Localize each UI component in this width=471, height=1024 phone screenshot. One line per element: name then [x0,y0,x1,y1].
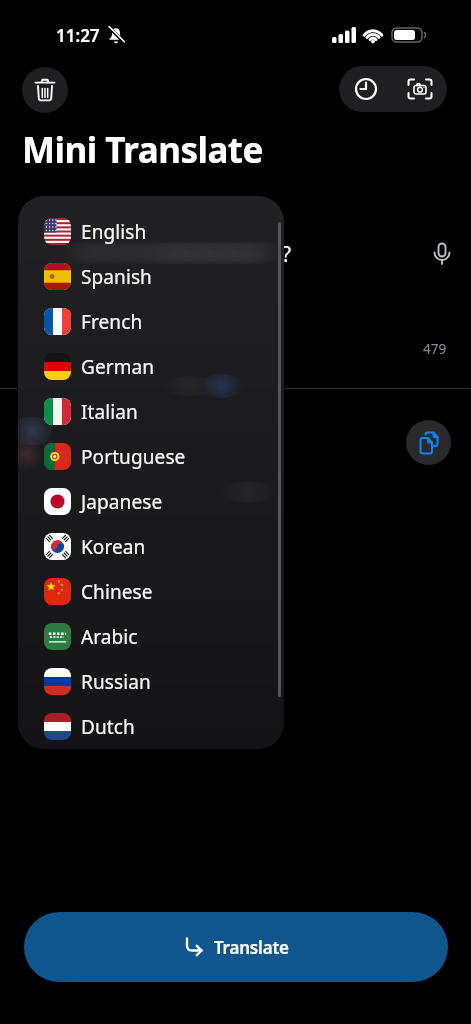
staticText: Translate [214,936,289,959]
button[interactable] [339,66,393,112]
staticText: Korean [81,534,146,560]
button[interactable]: Korean [18,524,284,569]
button[interactable] [428,240,456,268]
button[interactable]: Portuguese [18,434,284,479]
staticText: 479 [423,340,447,358]
button[interactable] [393,66,447,112]
staticText: Arabic [81,624,138,650]
staticText: German [81,354,155,380]
button[interactable]: Japanese [18,479,284,524]
staticText: Chinese [81,579,153,605]
staticText: Spanish [81,264,152,290]
button[interactable]: Arabic [18,614,284,659]
button[interactable]: German [18,344,284,389]
button[interactable] [406,420,451,465]
button[interactable]: Chinese [18,569,284,614]
staticText: English [81,219,147,245]
staticText: Japanese [81,489,163,515]
button[interactable]: English [18,209,284,254]
staticText: 11:27 [56,24,100,47]
staticText: ? [282,240,292,269]
button[interactable]: Dutch [18,704,284,749]
button[interactable]: Spanish [18,254,284,299]
staticText: Mini Translate [22,126,263,174]
button[interactable]: Italian [18,389,284,434]
staticText: French [81,309,143,335]
button[interactable]: Translate [24,912,448,982]
staticText: Italian [81,399,138,425]
staticText: Dutch [81,714,135,740]
staticText: Russian [81,669,151,695]
button[interactable]: French [18,299,284,344]
button[interactable]: Russian [18,659,284,704]
staticText: Portuguese [81,444,186,470]
button[interactable] [22,67,68,113]
